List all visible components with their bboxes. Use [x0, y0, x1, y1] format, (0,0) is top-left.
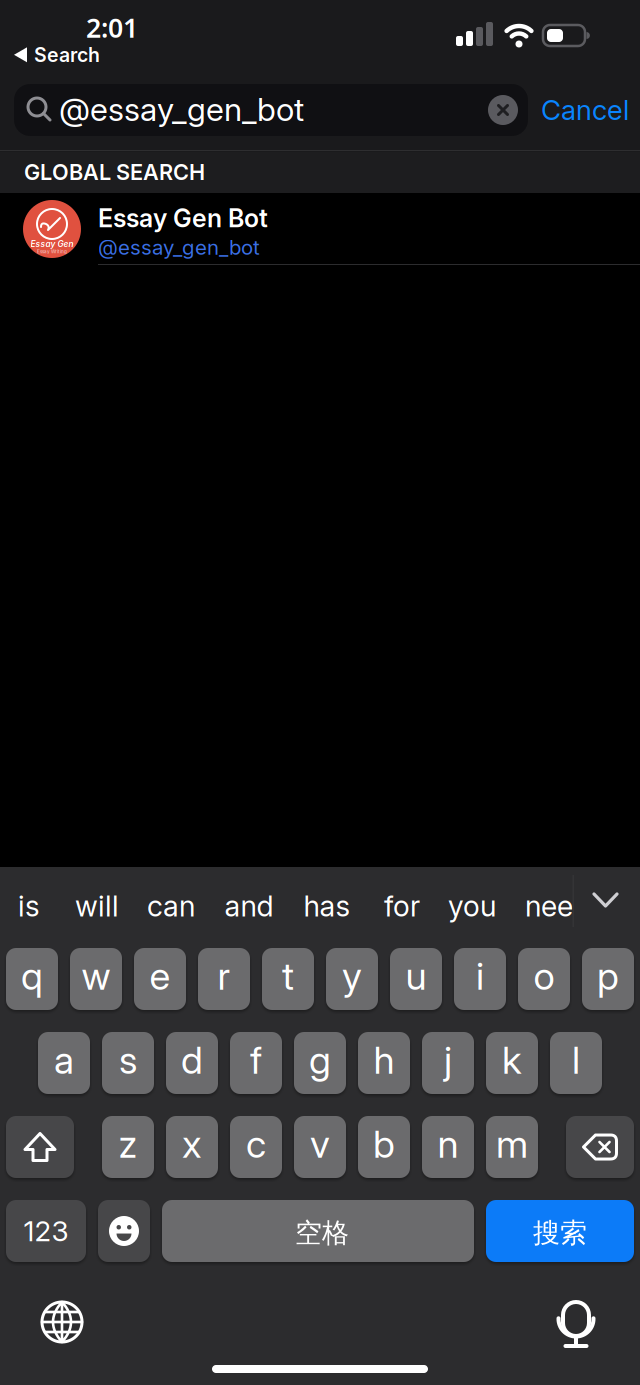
button[interactable]: m [486, 1116, 538, 1178]
staticText: 2:01 [86, 10, 138, 45]
button[interactable]: z [102, 1116, 154, 1178]
staticText: nee [525, 889, 573, 923]
staticText: z [118, 1121, 137, 1167]
staticText: t [282, 953, 294, 999]
button[interactable]: can [147, 889, 195, 923]
button[interactable]: n [422, 1116, 474, 1178]
staticText: d [181, 1037, 203, 1083]
button[interactable]: Essay Gen [0, 193, 640, 264]
button[interactable]: t [262, 948, 314, 1010]
staticText: m [496, 1121, 528, 1167]
button[interactable]: and [224, 889, 273, 923]
button[interactable]: Delete [566, 1116, 634, 1178]
staticText: @essay_gen_bot [98, 235, 260, 260]
staticText: f [250, 1037, 262, 1083]
staticText: h [373, 1037, 394, 1083]
staticText: 搜索 [533, 1216, 587, 1250]
staticText: and [224, 889, 273, 923]
button[interactable]: s [102, 1032, 154, 1094]
button[interactable]: will [75, 889, 119, 923]
staticText: GLOBAL SEARCH [24, 159, 205, 185]
button[interactable]: 空格 [162, 1200, 474, 1262]
button[interactable]: u [390, 948, 442, 1010]
button[interactable]: k [486, 1032, 538, 1094]
staticText: q [21, 953, 43, 999]
staticText: 空格 [295, 1216, 349, 1250]
button[interactable]: 123 [6, 1200, 86, 1262]
staticText: n [437, 1121, 458, 1167]
staticText: j [444, 1037, 452, 1083]
button[interactable]: is [18, 889, 40, 923]
staticText: you [448, 889, 496, 923]
staticText: c [246, 1121, 266, 1167]
button[interactable]: v [294, 1116, 346, 1178]
button[interactable]: you [448, 889, 496, 923]
staticText: i [476, 953, 484, 999]
staticText: w [81, 953, 110, 999]
button[interactable]: Hide suggestions [594, 894, 617, 906]
staticText: v [310, 1121, 330, 1167]
staticText: y [342, 953, 362, 999]
button[interactable]: p [582, 948, 634, 1010]
button[interactable]: Cancel [541, 93, 629, 127]
staticText: Cancel [541, 93, 629, 127]
staticText: s [119, 1037, 137, 1083]
button[interactable]: d [166, 1032, 218, 1094]
button[interactable]: y [326, 948, 378, 1010]
button[interactable]: w [70, 948, 122, 1010]
staticText: 123 [23, 1214, 68, 1248]
staticText: k [502, 1037, 522, 1083]
staticText: has [303, 889, 350, 923]
staticText: e [149, 953, 170, 999]
button[interactable]: x [166, 1116, 218, 1178]
staticText: @essay_gen_bot [59, 90, 304, 129]
staticText: g [309, 1037, 331, 1083]
button[interactable]: nee [525, 889, 573, 923]
button[interactable]: Dictation [556, 1295, 596, 1351]
staticText: for [384, 889, 420, 923]
button[interactable]: has [303, 889, 350, 923]
staticText: x [182, 1121, 202, 1167]
staticText: can [147, 889, 195, 923]
button[interactable]: g [294, 1032, 346, 1094]
staticText: b [373, 1121, 395, 1167]
button[interactable]: r [198, 948, 250, 1010]
button[interactable]: a [38, 1032, 90, 1094]
button[interactable]: b [358, 1116, 410, 1178]
button[interactable]: Next keyboard [42, 1302, 82, 1342]
staticText: Essay Writing [37, 249, 67, 254]
button[interactable]: Search [486, 1200, 634, 1262]
button[interactable]: j [422, 1032, 474, 1094]
staticText: l [572, 1037, 580, 1083]
staticText: o [533, 953, 554, 999]
button[interactable]: Clear text [488, 95, 518, 125]
staticText: r [217, 953, 230, 999]
staticText: a [54, 1037, 74, 1083]
button[interactable]: l [550, 1032, 602, 1094]
button[interactable]: Back to Search [14, 43, 100, 67]
button[interactable]: e [134, 948, 186, 1010]
staticText: Essay Gen Bot [98, 203, 268, 233]
button[interactable]: o [518, 948, 570, 1010]
staticText: is [18, 889, 40, 923]
button[interactable]: Shift [6, 1116, 74, 1178]
button[interactable]: for [384, 889, 420, 923]
staticText: Essay Gen [30, 239, 73, 249]
staticText: p [597, 953, 619, 999]
button[interactable]: Emoji [98, 1200, 150, 1262]
staticText: u [405, 953, 426, 999]
staticText: Search [34, 43, 100, 67]
staticText: will [75, 889, 119, 923]
button[interactable]: f [230, 1032, 282, 1094]
button[interactable]: i [454, 948, 506, 1010]
button[interactable]: h [358, 1032, 410, 1094]
button[interactable]: q [6, 948, 58, 1010]
button[interactable]: c [230, 1116, 282, 1178]
